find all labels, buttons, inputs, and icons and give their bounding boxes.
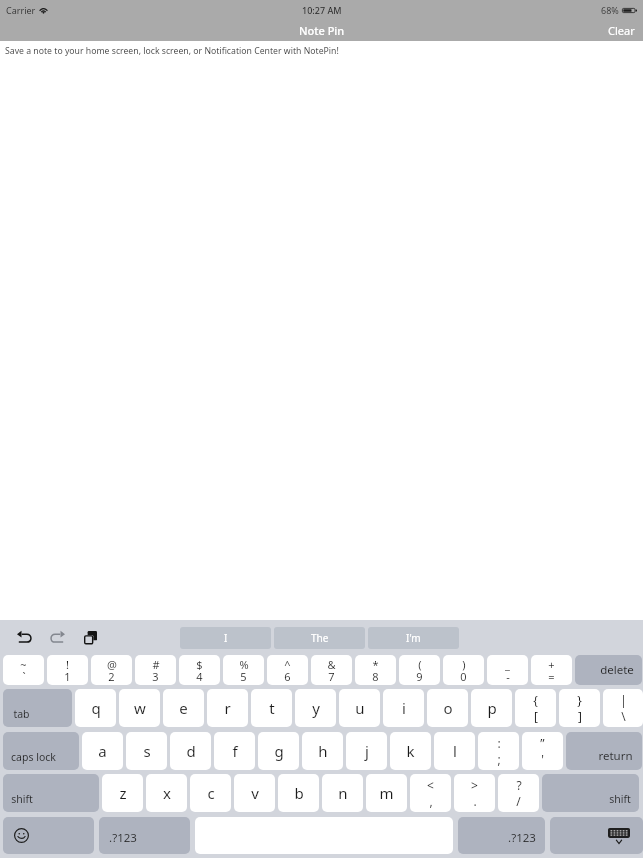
button[interactable]: n (322, 774, 363, 812)
staticText: / (516, 793, 521, 809)
button[interactable]: h (302, 732, 343, 770)
staticText: I (224, 631, 228, 645)
button[interactable]: Redo (41, 623, 74, 653)
button[interactable]: m (366, 774, 407, 812)
button[interactable]: s (126, 732, 167, 770)
button[interactable]: l (434, 732, 475, 770)
staticText: < (427, 777, 434, 793)
button[interactable]: a (82, 732, 123, 770)
button[interactable]: q (75, 689, 116, 727)
button[interactable]: + (531, 655, 572, 685)
button[interactable]: < (410, 774, 451, 812)
staticText: 68% (601, 4, 619, 16)
button[interactable]: ” (522, 732, 563, 770)
button[interactable]: shift (3, 774, 99, 812)
button[interactable]: | (603, 689, 643, 727)
button[interactable]: g (258, 732, 299, 770)
button[interactable]: c (190, 774, 231, 812)
staticText: - (506, 669, 510, 684)
button[interactable]: shift (542, 774, 639, 812)
button[interactable]: t (251, 689, 292, 727)
button[interactable]: # (135, 655, 176, 685)
staticText: r (224, 698, 231, 718)
staticText: = (548, 669, 555, 684)
button[interactable]: ^ (267, 655, 308, 685)
staticText: c (207, 783, 215, 803)
staticText: ? (516, 777, 522, 793)
button[interactable]: e (163, 689, 204, 727)
button[interactable]: .?123 (458, 817, 545, 854)
button[interactable]: Hide keyboard (550, 817, 643, 854)
staticText: Carrier (6, 4, 36, 16)
staticText: [ (534, 708, 538, 724)
button[interactable]: d (170, 732, 211, 770)
button[interactable]: $ (179, 655, 220, 685)
staticText: shift (609, 792, 631, 806)
button[interactable]: b (278, 774, 319, 812)
button[interactable]: r (207, 689, 248, 727)
staticText: t (269, 698, 275, 718)
button[interactable]: I (180, 627, 271, 649)
button[interactable]: } (559, 689, 600, 727)
button[interactable]: return (566, 732, 642, 770)
staticText: 7 (328, 669, 335, 684)
staticText: > (471, 777, 478, 793)
staticText: h (318, 741, 328, 761)
button[interactable]: { (515, 689, 556, 727)
staticText: caps lock (11, 750, 56, 764)
button[interactable]: tab (3, 689, 72, 727)
staticText: d (186, 741, 196, 761)
staticText: n (338, 783, 348, 803)
button[interactable]: : (478, 732, 519, 770)
button[interactable]: delete (575, 655, 642, 685)
button[interactable]: I'm (368, 627, 459, 649)
button[interactable]: % (223, 655, 264, 685)
button[interactable]: ) (443, 655, 484, 685)
staticText: I'm (406, 631, 421, 645)
staticText: return (598, 748, 633, 764)
button[interactable]: Paste (74, 623, 107, 653)
button[interactable]: j (346, 732, 387, 770)
staticText: . (473, 793, 477, 809)
button[interactable]: y (295, 689, 336, 727)
staticText: v (251, 783, 259, 803)
staticText: l (453, 741, 457, 761)
button[interactable]: .?123 (99, 817, 190, 854)
button[interactable]: caps lock (3, 732, 79, 770)
button[interactable]: Undo (8, 623, 41, 653)
button[interactable]: u (339, 689, 380, 727)
button[interactable]: x (146, 774, 187, 812)
staticText: ( (418, 657, 422, 672)
button[interactable]: z (102, 774, 143, 812)
staticText: 4 (196, 669, 203, 684)
staticText: ; (497, 751, 501, 767)
staticText: ) (462, 657, 466, 672)
button[interactable]: ! (47, 655, 88, 685)
button[interactable]: ? (498, 774, 539, 812)
button[interactable]: The (274, 627, 365, 649)
button[interactable]: p (471, 689, 512, 727)
button[interactable]: > (454, 774, 495, 812)
button[interactable]: v (234, 774, 275, 812)
button[interactable]: w (119, 689, 160, 727)
button[interactable]: ~ (3, 655, 44, 685)
button[interactable]: Clear (600, 20, 643, 41)
button[interactable]: @ (91, 655, 132, 685)
staticText: e (179, 698, 188, 718)
staticText: } (577, 692, 582, 708)
button[interactable]: f (214, 732, 255, 770)
staticText: q (91, 698, 101, 718)
button[interactable]: & (311, 655, 352, 685)
staticText: a (98, 741, 107, 761)
button[interactable]: * (355, 655, 396, 685)
button[interactable]: ( (399, 655, 440, 685)
button[interactable]: Emoji (3, 817, 94, 854)
staticText: \ (621, 708, 626, 724)
button[interactable]: i (383, 689, 424, 727)
button[interactable]: o (427, 689, 468, 727)
staticText: 6 (284, 669, 291, 684)
staticText: 9 (416, 669, 423, 684)
button[interactable]: k (390, 732, 431, 770)
button[interactable]: _ (487, 655, 528, 685)
